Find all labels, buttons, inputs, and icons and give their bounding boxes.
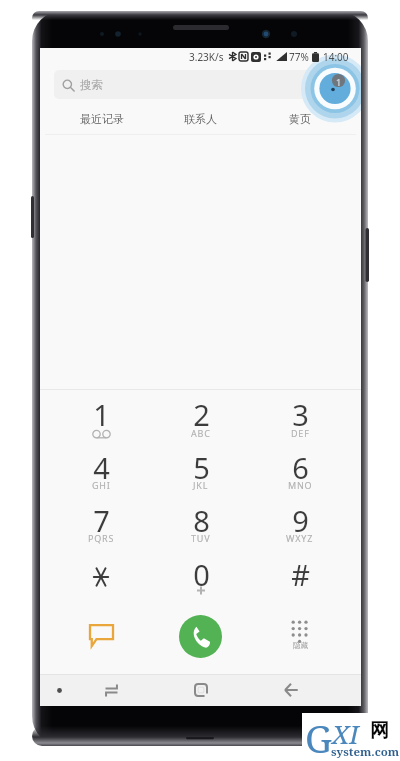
button[interactable]: More <box>47 678 71 702</box>
button[interactable]: Back <box>275 674 307 706</box>
button[interactable] <box>151 393 251 446</box>
staticText: 3.23K/s <box>189 50 224 64</box>
button[interactable] <box>250 499 350 552</box>
button[interactable]: Profile <box>317 74 351 108</box>
button[interactable] <box>51 446 151 499</box>
button[interactable]: 黄页 <box>250 106 349 132</box>
button[interactable]: Hide keypad <box>280 615 320 655</box>
button[interactable]: Send message <box>81 615 121 655</box>
button[interactable] <box>51 499 151 552</box>
staticText: 7 <box>93 501 110 535</box>
button[interactable]: Recent apps <box>95 674 127 706</box>
staticText: 联系人 <box>184 112 217 126</box>
staticText: 黄页 <box>289 112 311 126</box>
staticText: DEF <box>291 427 310 439</box>
staticText: 3 <box>292 395 309 429</box>
staticText: PQRS <box>88 532 115 544</box>
staticText: ABC <box>191 427 211 439</box>
staticText: 14:00 <box>323 50 349 64</box>
button[interactable] <box>250 553 350 606</box>
button[interactable] <box>51 553 151 606</box>
staticText: 隐藏 <box>293 641 308 650</box>
button[interactable] <box>151 446 251 499</box>
staticText: 最近记录 <box>80 112 124 126</box>
staticText: 4 <box>93 448 110 482</box>
staticText: 0 <box>193 555 210 589</box>
staticText: G <box>305 712 333 760</box>
staticText: 5 <box>193 448 210 482</box>
button[interactable] <box>151 499 251 552</box>
button[interactable] <box>51 393 151 446</box>
staticText: 1 <box>93 395 110 429</box>
button[interactable]: 搜索 <box>54 70 347 99</box>
staticText: TUV <box>191 532 211 544</box>
staticText: GHI <box>92 479 111 491</box>
staticText: # <box>291 555 310 589</box>
staticText: 6 <box>292 448 309 482</box>
button[interactable] <box>151 553 251 606</box>
staticText: system.com <box>331 744 400 760</box>
staticText: 搜索 <box>80 78 103 92</box>
button[interactable] <box>250 446 350 499</box>
staticText: 9 <box>292 501 309 535</box>
staticText: MNO <box>288 479 313 491</box>
staticText: 1 <box>336 76 342 88</box>
button[interactable]: 最近记录 <box>52 106 151 132</box>
staticText: WXYZ <box>286 532 314 544</box>
button[interactable]: 联系人 <box>151 106 250 132</box>
staticText: 8 <box>193 501 210 535</box>
staticText: XI <box>332 716 359 751</box>
button[interactable]: Home <box>185 674 217 706</box>
button[interactable] <box>250 393 350 446</box>
staticText: 77% <box>289 50 309 64</box>
staticText: 网 <box>370 719 389 743</box>
button[interactable]: Call <box>179 615 222 658</box>
staticText: 2 <box>193 395 210 429</box>
staticText: JKL <box>193 479 209 491</box>
